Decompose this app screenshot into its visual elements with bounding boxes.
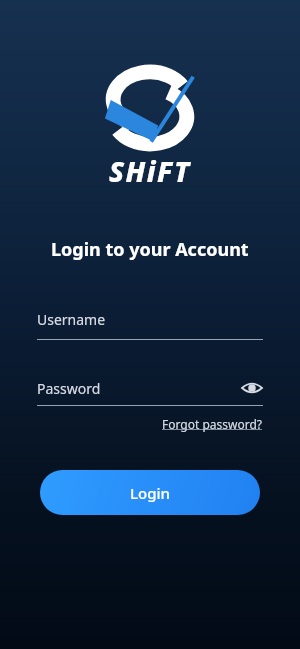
button[interactable]: Forgot password? — [162, 416, 263, 432]
button[interactable]: Login — [40, 470, 260, 515]
button[interactable]: Username — [37, 310, 263, 340]
staticText: Login — [130, 483, 170, 503]
other: SHiFT logo — [101, 68, 199, 148]
button[interactable]: Password — [37, 377, 263, 399]
staticText: Password — [37, 379, 101, 398]
staticText: Forgot password? — [162, 416, 263, 432]
staticText: Login to your Account — [51, 237, 249, 262]
staticText: SHiFT — [109, 152, 191, 190]
staticText: Username — [37, 310, 106, 329]
button[interactable]: Show password — [241, 377, 263, 399]
